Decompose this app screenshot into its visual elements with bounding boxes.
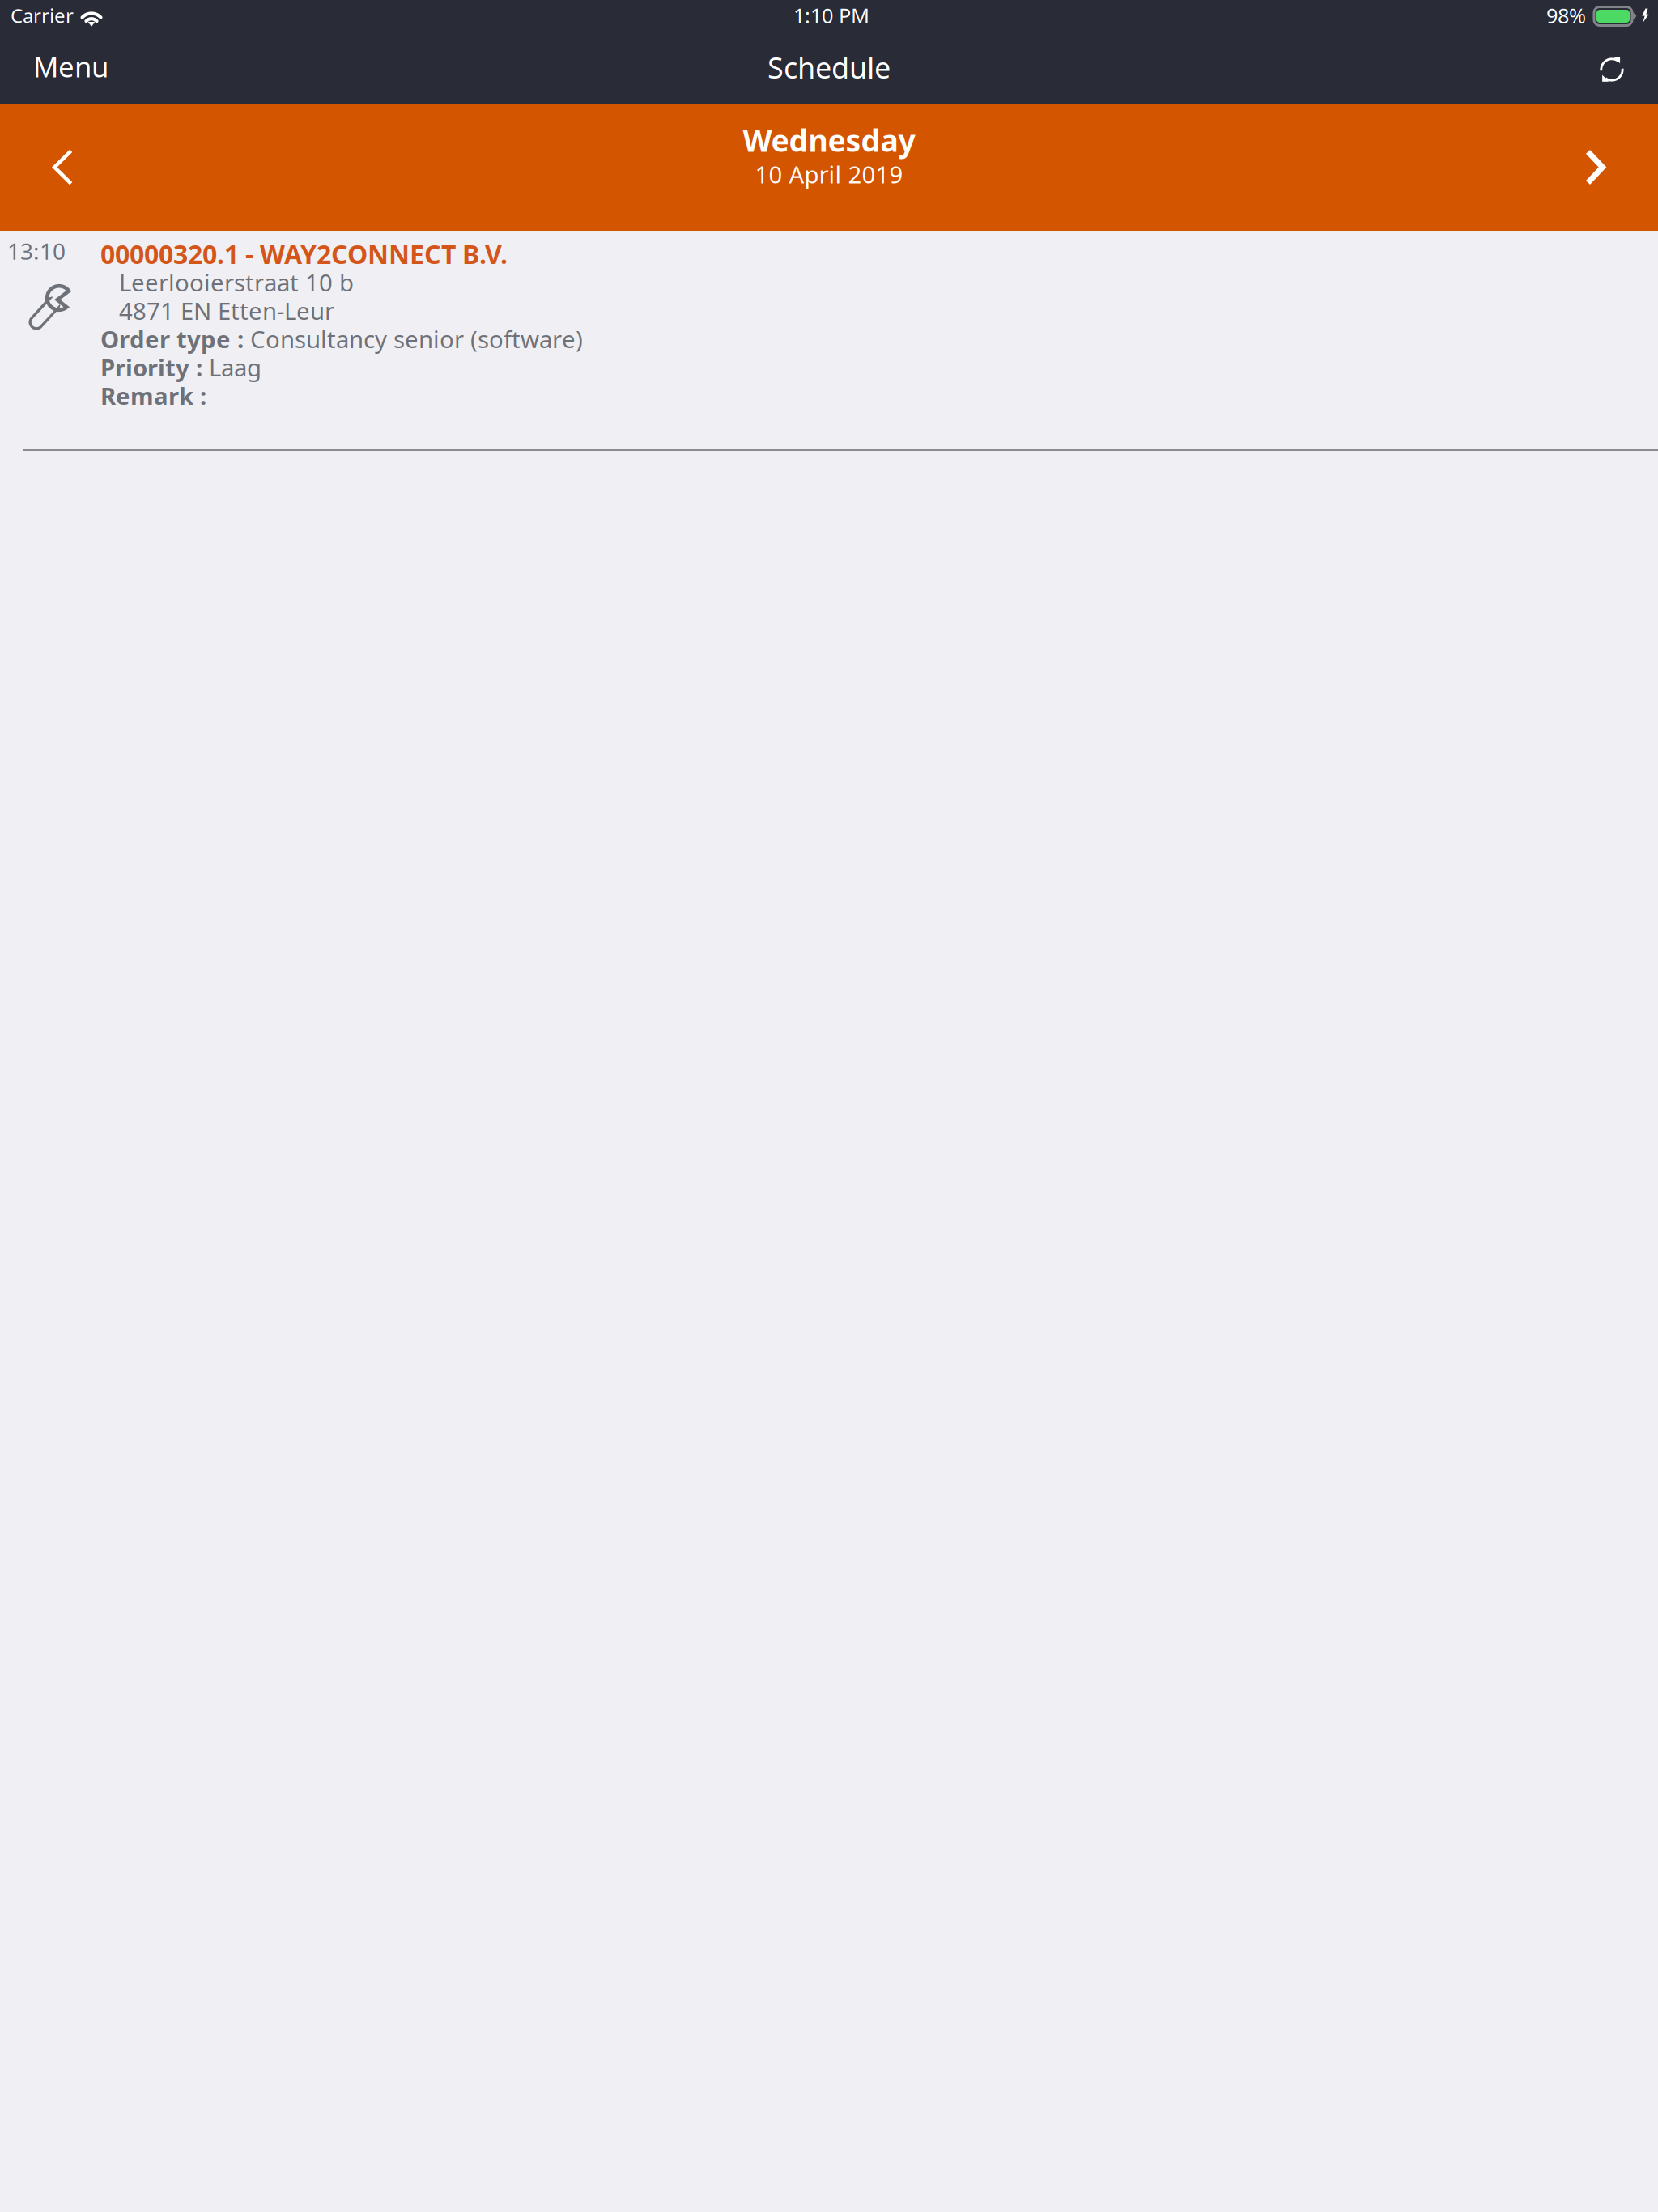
button[interactable]: Refresh (1572, 40, 1642, 104)
staticText: 1:10 PM (793, 2, 869, 29)
staticText: Laag (209, 351, 261, 383)
staticText: Remark : (100, 380, 213, 411)
staticText: Consultancy senior (software) (250, 323, 583, 355)
staticText: Order type : (100, 323, 250, 355)
staticText: Carrier (11, 3, 74, 28)
staticText: 13:10 (7, 236, 66, 266)
button[interactable]: Menu (16, 40, 125, 104)
button[interactable]: Previous day (0, 104, 89, 231)
staticText: Wednesday (743, 120, 915, 160)
staticText: Menu (33, 48, 108, 85)
staticText: 98% (1546, 2, 1586, 29)
staticText: 00000320.1 - WAY2CONNECT B.V. (100, 237, 508, 271)
staticText: Schedule (767, 48, 891, 87)
staticText: Leerlooierstraat 10 b (119, 266, 354, 298)
staticText: 4871 EN Etten-Leur (119, 295, 334, 326)
staticText: 10 April 2019 (755, 158, 903, 190)
staticText: Priority : (100, 351, 209, 383)
button[interactable]: Next day (1569, 104, 1658, 231)
button[interactable]: 13:10 (0, 231, 1658, 452)
